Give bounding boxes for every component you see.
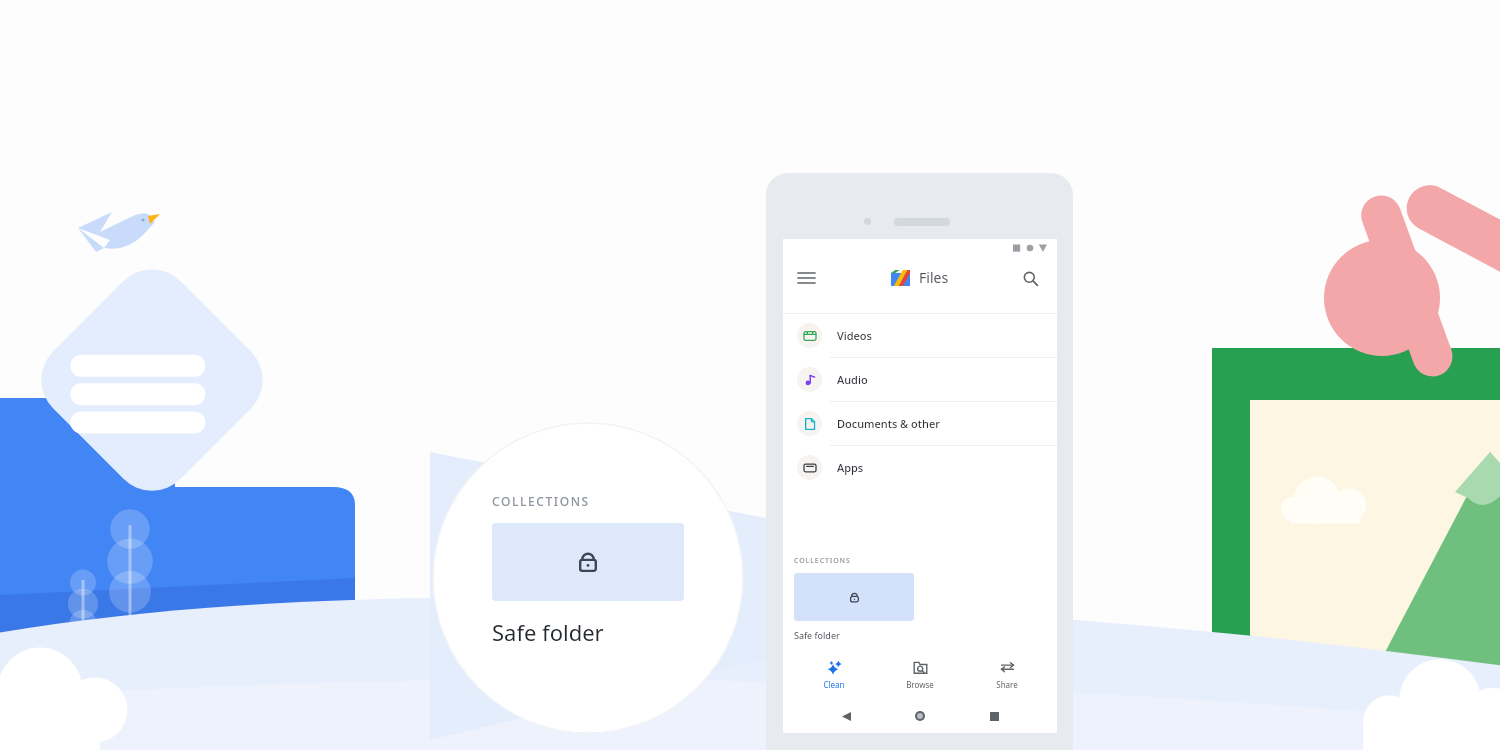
staticText: Clean [823,679,845,690]
staticText: Safe folder [492,617,604,647]
staticText: COLLECTIONS [492,493,590,509]
staticText: Safe folder [794,629,840,641]
button[interactable]: Recents [983,705,1005,727]
button[interactable]: Home [909,705,931,727]
button[interactable]: Search [1017,265,1043,291]
staticText: Browse [906,679,934,690]
button[interactable]: Documents & other [783,402,1057,446]
staticText: COLLECTIONS [794,556,851,566]
staticText: Videos [837,328,872,343]
button[interactable]: Menu [793,265,819,291]
staticText: Files [919,268,949,287]
staticText: Documents & other [837,416,940,431]
button[interactable]: Clean [798,656,870,694]
button[interactable]: Back [835,705,857,727]
staticText: Audio [837,372,868,387]
button[interactable]: Audio [783,358,1057,402]
button[interactable]: Safe folder [794,573,914,621]
button[interactable]: Apps [783,446,1057,489]
button[interactable]: Safe folder locked [492,523,684,601]
button[interactable]: Videos [783,314,1057,358]
staticText: Apps [837,460,864,475]
staticText: Share [996,679,1018,690]
button[interactable]: Browse [884,656,956,694]
button[interactable]: Share [971,656,1043,694]
